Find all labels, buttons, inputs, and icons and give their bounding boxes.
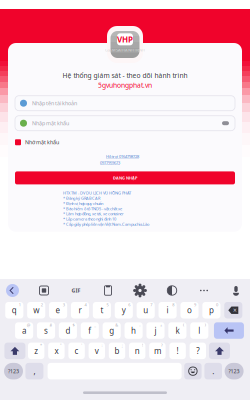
staticText: g	[109, 325, 114, 336]
button[interactable]: ?123	[4, 363, 23, 379]
staticText: $	[72, 322, 74, 328]
staticText: "	[60, 343, 62, 348]
button[interactable]: d	[59, 322, 77, 339]
staticText: w	[33, 305, 39, 315]
button[interactable]: Shift	[4, 343, 25, 359]
staticText: * Làm hợp đồng, xe tải, xe container	[63, 211, 124, 216]
button[interactable]: Back	[6, 284, 19, 297]
staticText: ?123	[229, 368, 240, 375]
staticText: ĐĂNG NHẬP	[113, 175, 137, 181]
button[interactable]: Shift	[209, 343, 230, 359]
staticText: Nhớ mật khẩu	[25, 139, 59, 146]
staticText: ?	[161, 343, 163, 348]
staticText: +	[160, 322, 162, 328]
button[interactable]: ĐĂNG NHẬP	[15, 171, 235, 184]
button[interactable]: m	[149, 343, 166, 359]
staticText: -	[139, 322, 140, 328]
button[interactable]: 0977959673	[100, 160, 120, 165]
button[interactable]: Nhớ mật khẩu	[15, 139, 235, 146]
button[interactable]: Hỗ trợ: 0164798728	[106, 154, 139, 159]
button[interactable]: Enter	[214, 322, 244, 339]
staticText: z	[34, 345, 38, 356]
staticText: GIF	[71, 287, 80, 294]
staticText: _	[94, 322, 96, 328]
button[interactable]: Stickers	[37, 283, 51, 297]
button[interactable]: l	[190, 322, 208, 339]
button[interactable]: More	[197, 283, 211, 297]
staticText: n	[135, 345, 140, 356]
staticText: f	[88, 325, 91, 336]
button[interactable]: Voice input	[229, 283, 243, 297]
staticText: 6	[128, 302, 130, 307]
button[interactable]: o	[180, 302, 199, 318]
button[interactable]: Nhập tên tài khoản	[15, 96, 235, 111]
button[interactable]: Nhập mật khẩu	[15, 116, 235, 131]
staticText: HTX TM - DV DU LỊCH VŨ HỒNG PHÁT	[63, 190, 131, 196]
button[interactable]: n	[129, 343, 145, 359]
button[interactable]: Settings	[133, 283, 147, 297]
staticText: *	[40, 343, 42, 348]
button[interactable]: i	[159, 302, 177, 318]
staticText: 2	[41, 302, 43, 307]
button[interactable]: b	[109, 343, 125, 359]
button[interactable]: .	[204, 363, 222, 379]
staticText: #	[50, 322, 53, 328]
staticText: &	[115, 322, 118, 328]
staticText: i	[167, 305, 169, 315]
button[interactable]: v	[89, 343, 105, 359]
button[interactable]: Clipboard	[101, 283, 115, 297]
button[interactable]: x	[48, 343, 65, 359]
staticText: d	[65, 325, 70, 336]
button[interactable]: ,	[25, 363, 43, 379]
button[interactable]: ?123	[225, 363, 244, 379]
staticText: ;	[122, 343, 123, 348]
staticText: * Định vị hợp quy chuẩn	[63, 201, 103, 206]
staticText: 7	[150, 302, 152, 307]
staticText: m	[154, 345, 161, 356]
button[interactable]: Emoji	[184, 363, 202, 379]
button[interactable]: a	[15, 322, 33, 339]
button[interactable]: u	[137, 302, 155, 318]
staticText: h	[131, 325, 136, 336]
button[interactable]: s	[37, 322, 55, 339]
staticText: 5	[106, 302, 108, 307]
button[interactable]: w	[27, 302, 45, 318]
button[interactable]: y	[115, 302, 133, 318]
button[interactable]: e	[49, 302, 67, 318]
staticText: a	[22, 325, 26, 336]
staticText: b	[114, 345, 119, 356]
staticText: ?	[196, 345, 199, 356]
staticText: 4	[85, 302, 87, 307]
staticText: Nhập mật khẩu	[32, 120, 69, 127]
button[interactable]: z	[28, 343, 44, 359]
button[interactable]: h	[125, 322, 143, 339]
staticText: c	[75, 345, 79, 356]
staticText: 3	[63, 302, 65, 307]
button[interactable]: q	[5, 302, 23, 318]
staticText: )	[205, 322, 206, 328]
button[interactable]: j	[146, 322, 165, 339]
staticText: (	[183, 322, 184, 328]
staticText: .	[212, 366, 214, 376]
button[interactable]: p	[202, 302, 220, 318]
staticText: GIAMSATHANHTRINH	[105, 47, 145, 53]
staticText: 0977959673	[100, 160, 120, 165]
button[interactable]: GIF	[69, 283, 83, 297]
button[interactable]: c	[68, 343, 85, 359]
button[interactable]: !	[169, 343, 186, 359]
button[interactable]: t	[93, 302, 111, 318]
button[interactable]: Theme	[165, 283, 179, 297]
staticText: t	[100, 305, 103, 315]
button[interactable]: ?	[190, 343, 206, 359]
staticText: !	[142, 343, 143, 348]
button[interactable]: f	[81, 322, 99, 339]
button[interactable]: r	[71, 302, 89, 318]
staticText: v	[95, 345, 99, 356]
button[interactable]: k	[168, 322, 186, 339]
button[interactable]: Backspace	[224, 302, 242, 318]
button[interactable]: g	[103, 322, 121, 339]
staticText: ×	[233, 306, 237, 315]
staticText: p	[209, 305, 214, 315]
